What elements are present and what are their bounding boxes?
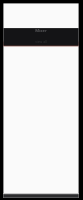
- button[interactable]: Navigation bar: [3, 195, 79, 200]
- button[interactable]: Mixer: [3, 28, 79, 46]
- staticText: view all: [35, 39, 47, 44]
- staticText: Mixer: [35, 28, 47, 34]
